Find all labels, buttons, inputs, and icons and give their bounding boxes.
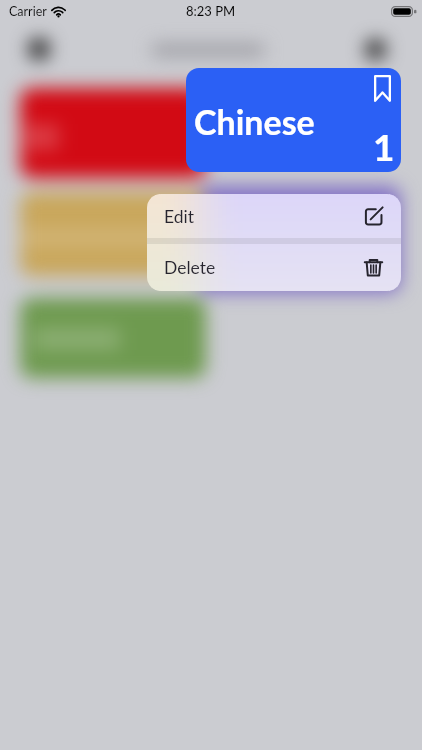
staticText: Carrier — [9, 4, 47, 19]
staticText: 1 — [373, 124, 395, 168]
button[interactable]: Chinese — [186, 68, 401, 172]
staticText: Chinese — [194, 101, 315, 142]
other: Delete — [364, 258, 383, 277]
button[interactable]: Edit — [147, 194, 401, 238]
staticText: Edit — [164, 206, 195, 227]
other: Edit — [364, 207, 383, 226]
button[interactable]: Delete — [147, 244, 401, 291]
staticText: Delete — [164, 257, 216, 278]
staticText: 8:23 PM — [186, 3, 236, 19]
other: Bookmark — [374, 75, 391, 102]
